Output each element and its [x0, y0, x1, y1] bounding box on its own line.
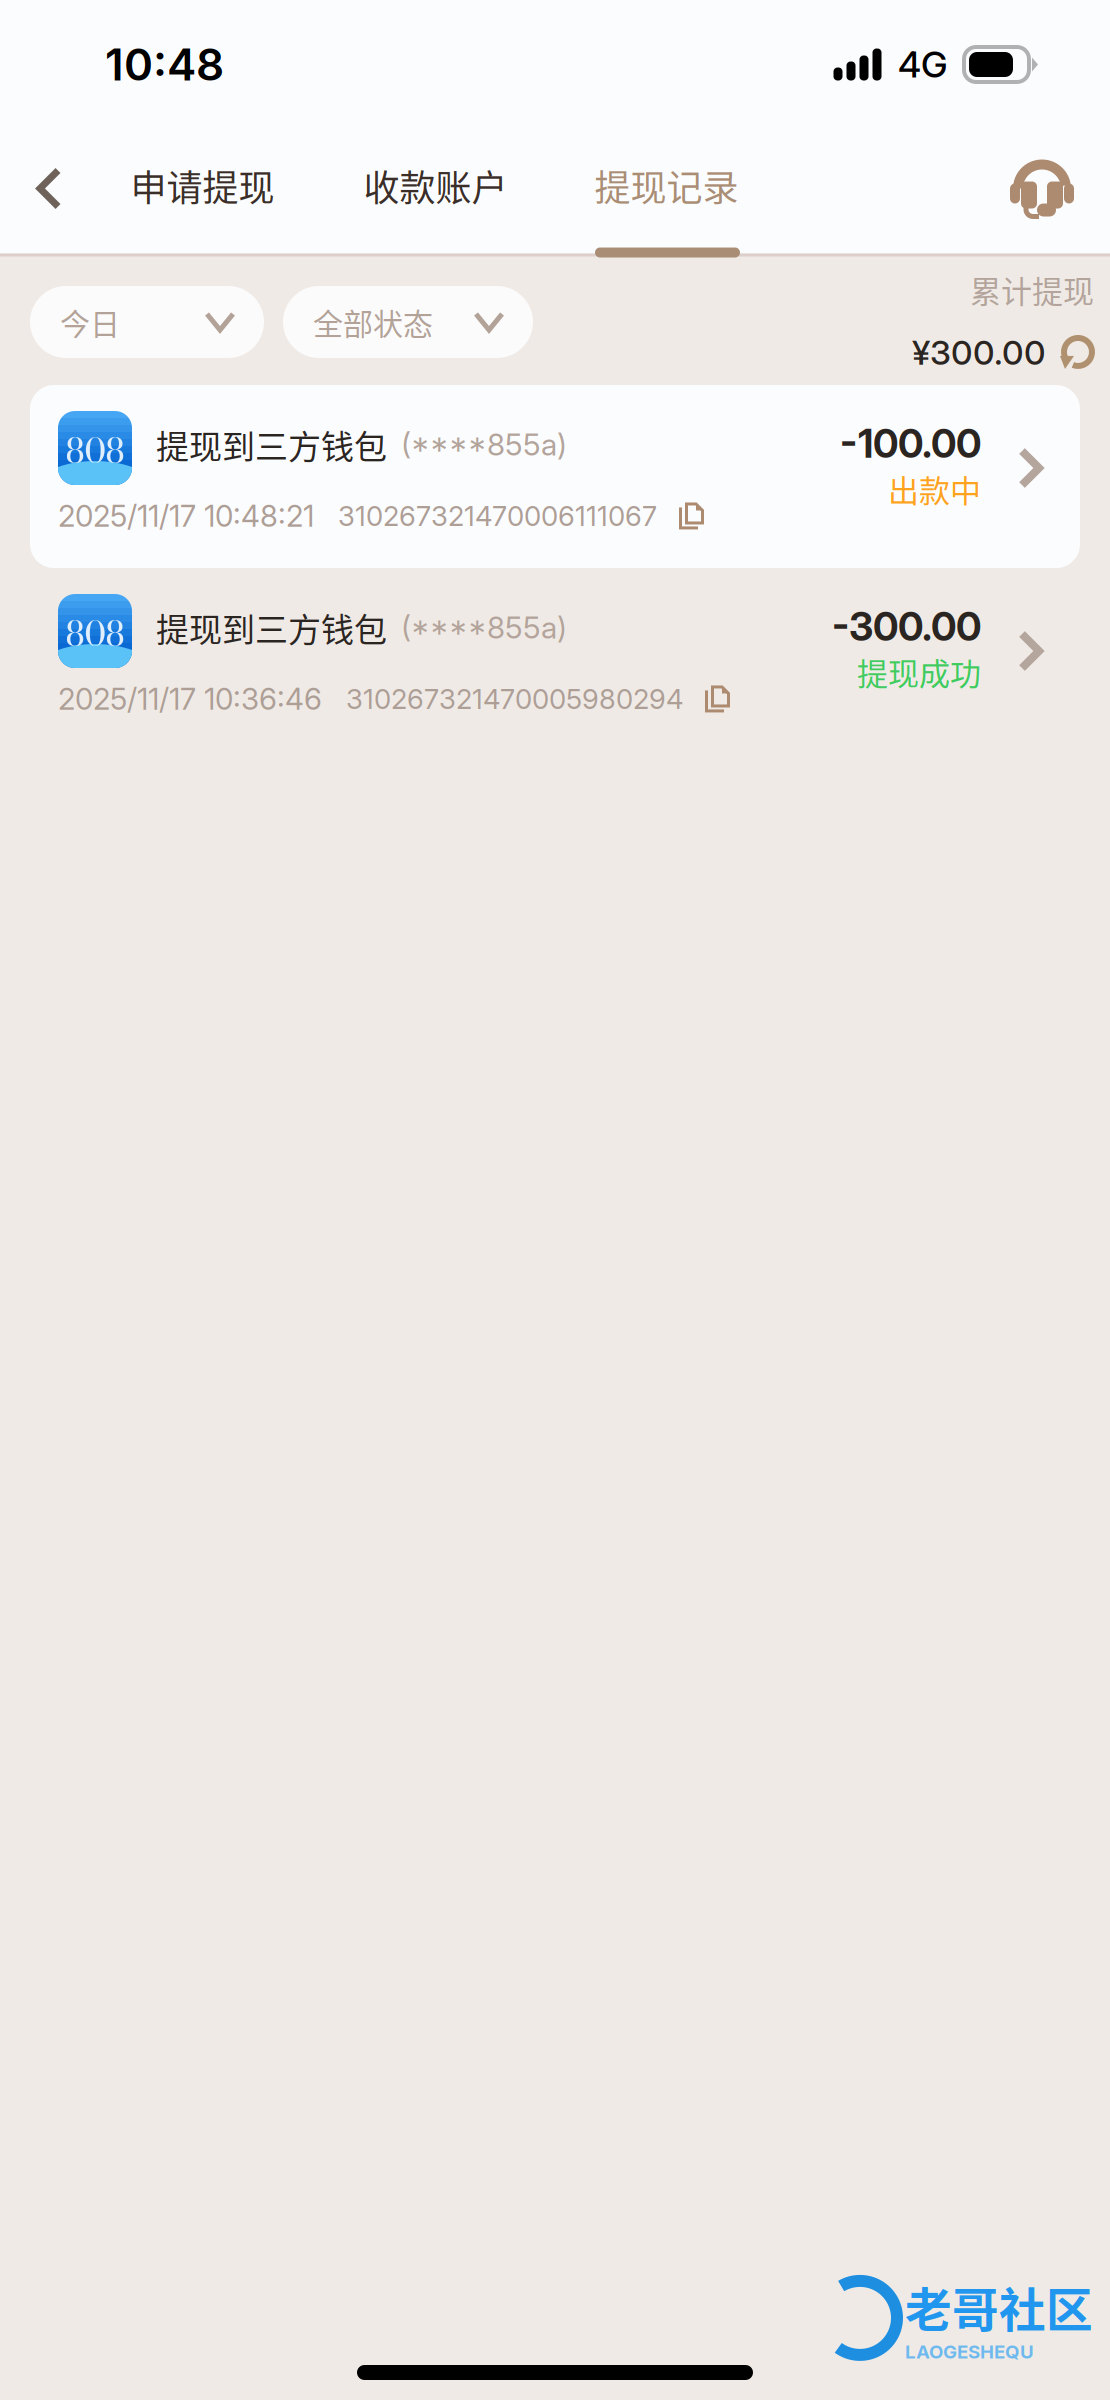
button[interactable]: 808	[30, 385, 1080, 568]
staticText: 808	[65, 424, 124, 477]
staticText: 收款账户	[363, 159, 507, 212]
button[interactable]: 今日	[30, 286, 264, 358]
staticText: 808	[65, 607, 124, 660]
staticText: 2025/11/17 10:36:46	[58, 681, 322, 717]
button[interactable]: Customer service	[1009, 128, 1110, 254]
staticText: (****855a)	[401, 426, 567, 463]
staticText: 老哥社区	[905, 2273, 1093, 2340]
staticText: 提现记录	[594, 159, 738, 212]
button[interactable]: 提现记录	[594, 128, 739, 252]
staticText: 4G	[898, 43, 948, 86]
staticText: -100.00	[840, 420, 981, 467]
button[interactable]: 收款账户	[363, 128, 508, 252]
staticText: 提现到三方钱包	[156, 604, 387, 651]
staticText: 全部状态	[313, 300, 433, 344]
button[interactable]: Back	[0, 128, 130, 252]
staticText: ¥300.00	[912, 332, 1046, 373]
staticText: 提现成功	[857, 649, 981, 694]
staticText: 2025/11/17 10:48:21	[58, 498, 314, 534]
staticText: 出款中	[888, 466, 981, 511]
staticText: (****855a)	[401, 609, 567, 646]
button[interactable]: 全部状态	[283, 286, 533, 358]
staticText: LAOGESHEQU	[905, 2340, 1034, 2363]
staticText: 申请提现	[130, 159, 274, 212]
staticText: 今日	[60, 300, 120, 344]
staticText: 310267321470006111067	[338, 499, 657, 533]
staticText: 累计提现	[970, 267, 1094, 312]
staticText: 310267321470005980294	[346, 682, 683, 716]
staticText: 提现到三方钱包	[156, 421, 387, 468]
staticText: -300.00	[832, 603, 981, 650]
button[interactable]: 申请提现	[130, 128, 275, 252]
button[interactable]: 808	[30, 568, 1080, 751]
staticText: 10:48	[105, 38, 224, 91]
